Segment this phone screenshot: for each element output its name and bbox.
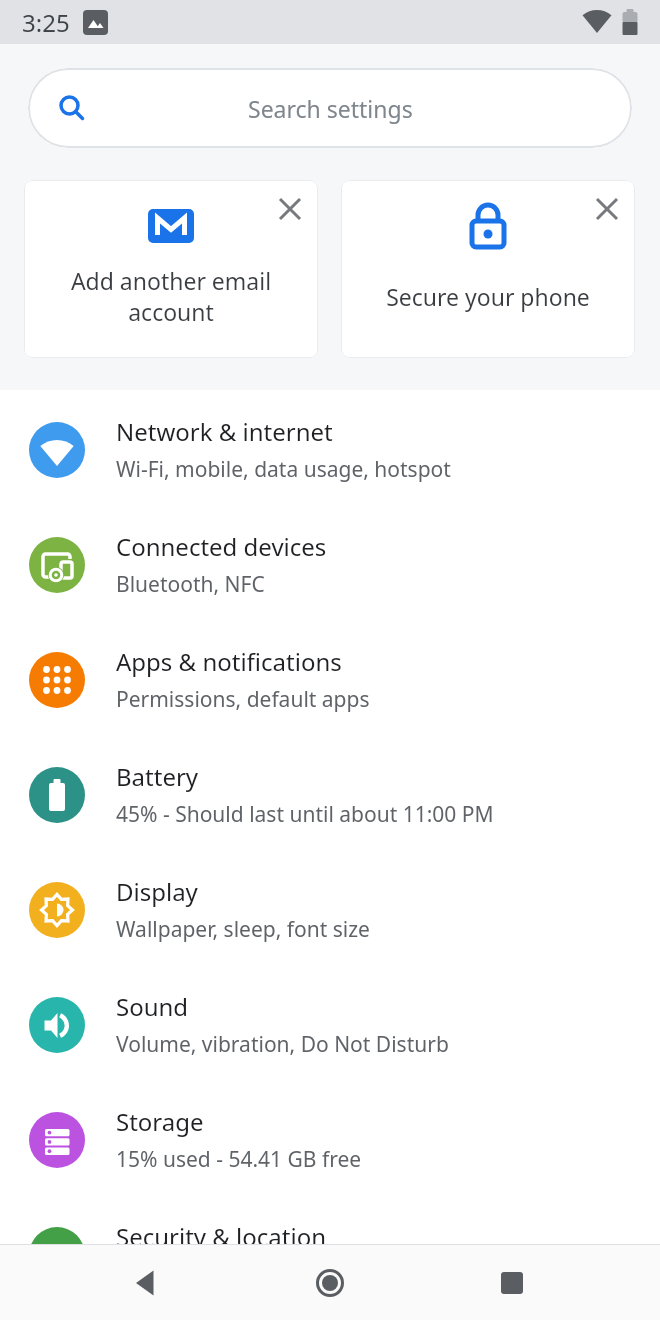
button[interactable] — [596, 198, 618, 220]
button[interactable]: Search settings — [28, 68, 632, 148]
staticText: Sound — [116, 990, 189, 1023]
button[interactable]: Connected devices — [0, 507, 660, 622]
staticText: Storage — [116, 1105, 204, 1138]
button[interactable]: Secure your phone — [341, 180, 635, 358]
button[interactable]: Security & location — [0, 1197, 660, 1312]
staticText: Permissions, default apps — [116, 685, 370, 714]
staticText: Wi-Fi, mobile, data usage, hotspot — [116, 455, 451, 484]
staticText: Bluetooth, NFC — [116, 570, 265, 599]
staticText: 15% used - 54.41 GB free — [116, 1145, 362, 1174]
staticText: Secure your phone — [368, 281, 608, 312]
button[interactable]: Storage — [0, 1082, 660, 1197]
staticText: 45% - Should last until about 11:00 PM — [116, 800, 494, 829]
button[interactable] — [279, 198, 301, 220]
staticText: Volume, vibration, Do Not Disturb — [116, 1030, 449, 1059]
button[interactable]: Display — [0, 852, 660, 967]
staticText: Screen lock, fingerprint — [116, 1260, 346, 1289]
button[interactable]: Add another email account — [24, 180, 318, 358]
button[interactable]: Network & internet — [0, 392, 660, 507]
staticText: Wallpaper, sleep, font size — [116, 915, 370, 944]
button[interactable] — [133, 1269, 161, 1297]
button[interactable]: Battery — [0, 737, 660, 852]
staticText: Add another email account — [51, 265, 291, 328]
staticText: Display — [116, 875, 198, 908]
staticText: Battery — [116, 760, 199, 793]
button[interactable] — [314, 1267, 346, 1299]
button[interactable]: Apps & notifications — [0, 622, 660, 737]
staticText: Search settings — [248, 93, 413, 124]
staticText: Network & internet — [116, 415, 333, 448]
staticText: Connected devices — [116, 530, 327, 563]
button[interactable] — [500, 1271, 524, 1295]
button[interactable]: Sound — [0, 967, 660, 1082]
staticText: Apps & notifications — [116, 645, 342, 678]
staticText: Security & location — [116, 1220, 327, 1253]
staticText: 3:25 — [22, 6, 70, 39]
